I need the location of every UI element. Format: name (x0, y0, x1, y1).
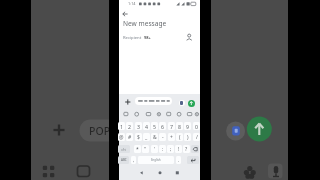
button[interactable]: . (176, 156, 181, 164)
staticText: * (136, 146, 139, 153)
staticText: ; (170, 146, 172, 153)
button[interactable]: @ (118, 133, 125, 141)
button[interactable]: 4 (143, 122, 150, 130)
staticText: Recipient (123, 35, 142, 41)
staticText: & (153, 134, 157, 141)
button[interactable]: * (134, 145, 141, 153)
button[interactable] (191, 145, 199, 153)
button[interactable]: =\< (118, 145, 130, 153)
button[interactable]: 7 (168, 122, 175, 130)
staticText: ? (185, 146, 188, 153)
button[interactable]: & (151, 133, 158, 141)
staticText: 8 (178, 123, 181, 130)
staticText: / (196, 134, 198, 141)
button[interactable]: ! (175, 145, 182, 153)
button[interactable]: 6 (159, 122, 166, 130)
staticText: $ (137, 134, 140, 141)
staticText: New message (123, 19, 167, 28)
staticText: ABC (121, 158, 127, 162)
staticText: : (162, 146, 164, 153)
button[interactable]: / (193, 133, 200, 141)
button[interactable]: ? (183, 145, 190, 153)
button[interactable] (121, 10, 129, 18)
staticText: 3 (137, 123, 140, 130)
button[interactable]: # (126, 133, 133, 141)
staticText: English (151, 158, 161, 162)
button[interactable]: 8 (176, 122, 183, 130)
staticText: - (162, 134, 164, 141)
staticText: 98+ (144, 35, 151, 40)
staticText: 0 (195, 123, 198, 130)
staticText: 4 (145, 123, 148, 130)
button[interactable]: 3 (135, 122, 142, 130)
button[interactable]: - (159, 133, 166, 141)
button[interactable] (188, 100, 195, 107)
staticText: @ (119, 134, 124, 141)
button[interactable]: 0 (193, 122, 200, 130)
staticText: 5 (153, 123, 156, 130)
button[interactable]: + (168, 133, 175, 141)
button[interactable]: Recipient (119, 32, 200, 42)
staticText: ! (178, 146, 180, 153)
button[interactable]: ) (184, 133, 191, 141)
staticText: =\< (121, 147, 127, 152)
button[interactable]: 1 (118, 122, 125, 130)
button[interactable]: $ (135, 133, 142, 141)
staticText: 1:14 (128, 1, 136, 6)
staticText: " (144, 146, 147, 153)
button[interactable]: ABC (118, 156, 129, 164)
staticText: , (133, 157, 135, 163)
button[interactable] (124, 98, 132, 106)
staticText: + (170, 134, 173, 141)
button[interactable]: _ (143, 133, 150, 141)
button[interactable]: , (131, 156, 136, 164)
button[interactable]: " (142, 145, 149, 153)
staticText: . (178, 157, 180, 163)
button[interactable]: : (159, 145, 166, 153)
button[interactable]: ( (176, 133, 183, 141)
button[interactable]: 2 (126, 122, 133, 130)
staticText: 2 (128, 123, 131, 130)
staticText: ' (154, 146, 156, 153)
staticText: POP (89, 124, 111, 138)
staticText: 9 (186, 123, 189, 130)
button[interactable] (187, 156, 199, 164)
staticText: ) (187, 134, 189, 141)
staticText: ( (179, 134, 181, 141)
staticText: _ (145, 134, 148, 141)
button[interactable]: ; (167, 145, 174, 153)
staticText: 7 (170, 123, 173, 130)
staticText: 6 (161, 123, 164, 130)
staticText: 1 (120, 123, 123, 130)
button[interactable]: 5 (151, 122, 158, 130)
button[interactable]: 9 (184, 122, 191, 130)
button[interactable]: English (138, 156, 174, 164)
staticText: # (128, 134, 132, 141)
button[interactable]: ' (151, 145, 158, 153)
button[interactable] (135, 97, 172, 105)
button[interactable] (179, 100, 185, 106)
